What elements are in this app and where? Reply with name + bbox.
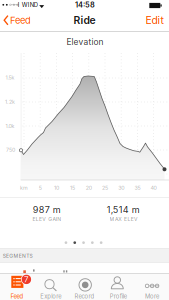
staticText: 1.0k: [5, 123, 14, 129]
staticText: 15: [70, 184, 75, 191]
button[interactable]: 7: [0, 274, 34, 300]
staticText: 1,514 m: [107, 204, 140, 215]
staticText: 987 m: [33, 204, 61, 215]
staticText: Ride: [73, 14, 95, 27]
staticText: SEGMENTS: [3, 253, 32, 259]
staticText: Explore: [40, 293, 61, 300]
staticText: 1.2k: [5, 98, 15, 105]
staticText: 30: [118, 184, 124, 191]
staticText: 20: [86, 184, 92, 191]
staticText: I WIND: [18, 1, 38, 8]
button[interactable]: Explore: [34, 274, 68, 300]
staticText: 10: [54, 184, 59, 191]
staticText: 40: [151, 184, 157, 191]
staticText: Record: [74, 293, 94, 300]
staticText: Feed: [10, 15, 31, 26]
button[interactable]: More: [135, 274, 169, 300]
staticText: 7: [24, 275, 29, 284]
staticText: 35: [134, 184, 140, 191]
staticText: 1.5k: [5, 74, 14, 81]
staticText: 5: [39, 184, 42, 191]
staticText: Edit: [145, 14, 163, 27]
staticText: 750: [6, 147, 15, 153]
staticText: More: [145, 293, 159, 300]
button[interactable]: Feed: [0, 13, 33, 28]
staticText: MAX ELEV: [110, 216, 137, 222]
staticText: Elevation: [66, 37, 103, 47]
staticText: ELEV GAIN: [32, 216, 61, 222]
staticText: Profile: [110, 293, 127, 300]
staticText: 14:58: [75, 0, 95, 9]
button[interactable]: Profile: [101, 274, 135, 300]
button[interactable]: Record: [68, 274, 101, 300]
button[interactable]: Edit: [144, 13, 164, 27]
staticText: Feed: [10, 293, 23, 300]
staticText: km: [20, 184, 28, 191]
staticText: 25: [102, 184, 108, 191]
